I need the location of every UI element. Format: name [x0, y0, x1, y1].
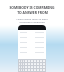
staticText: Lorem ipsum dolor sit amet	[16, 17, 48, 20]
staticText: SOMEBODY IS COMPARING	[9, 5, 55, 10]
staticText: consectetur adipiscing	[19, 20, 45, 23]
staticText: TO ANSWER FROM	[17, 10, 48, 15]
